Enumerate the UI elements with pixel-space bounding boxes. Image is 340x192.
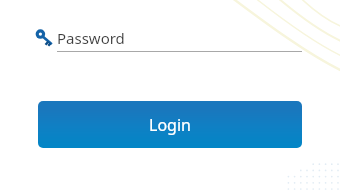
other: Password key <box>35 29 53 46</box>
staticText: Password <box>57 28 125 48</box>
button[interactable]: Login <box>38 101 302 148</box>
staticText: Login <box>149 114 191 136</box>
